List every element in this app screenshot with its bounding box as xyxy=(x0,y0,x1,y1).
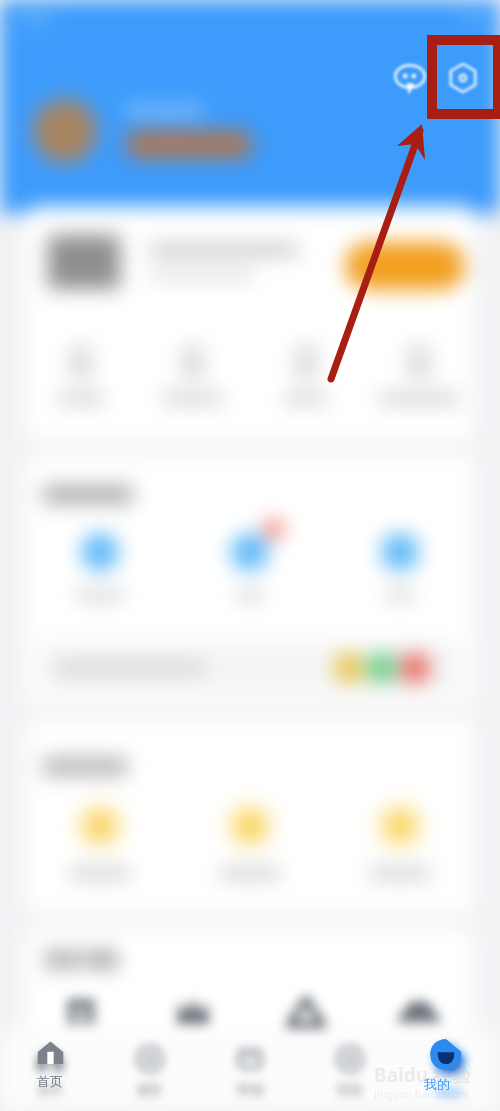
button[interactable]: 首页 xyxy=(0,1030,100,1111)
staticText: 权益 xyxy=(337,1081,363,1097)
button[interactable] xyxy=(175,801,325,879)
button[interactable] xyxy=(345,242,465,290)
button[interactable]: Settings xyxy=(442,57,484,99)
button[interactable] xyxy=(39,642,461,694)
button[interactable] xyxy=(175,533,325,601)
staticText: 服务 xyxy=(137,1081,163,1097)
button[interactable] xyxy=(25,801,175,879)
button[interactable] xyxy=(325,533,475,601)
button[interactable]: 权益 xyxy=(300,1030,400,1111)
button[interactable] xyxy=(249,348,362,404)
button[interactable]: Messages xyxy=(389,57,431,99)
staticText: 首页 xyxy=(37,1081,63,1097)
button[interactable] xyxy=(249,992,362,1032)
button[interactable]: 商城 xyxy=(200,1030,300,1111)
staticText: 我的 xyxy=(424,1076,450,1092)
staticText: 商城 xyxy=(237,1081,263,1097)
button[interactable]: 首页 xyxy=(22,1038,78,1100)
button[interactable]: 我的 xyxy=(400,1030,500,1111)
button[interactable] xyxy=(25,992,137,1032)
button[interactable] xyxy=(33,99,253,163)
staticText: 更多功能 xyxy=(45,949,117,972)
button[interactable]: 服务 xyxy=(100,1030,200,1111)
staticText: Baidu 经验 xyxy=(374,1062,471,1088)
staticText: 5G xyxy=(466,10,482,26)
button[interactable] xyxy=(137,992,249,1032)
staticText: 首页 xyxy=(37,1073,63,1089)
button[interactable] xyxy=(362,348,475,404)
button[interactable] xyxy=(325,801,475,879)
button[interactable] xyxy=(25,348,137,404)
button[interactable] xyxy=(137,348,249,404)
button[interactable] xyxy=(25,533,175,601)
staticText: 14:58 xyxy=(18,10,49,26)
staticText: jingyan.baidu.com xyxy=(374,1086,470,1101)
button[interactable] xyxy=(362,992,475,1032)
staticText: 我的 xyxy=(437,1084,463,1100)
